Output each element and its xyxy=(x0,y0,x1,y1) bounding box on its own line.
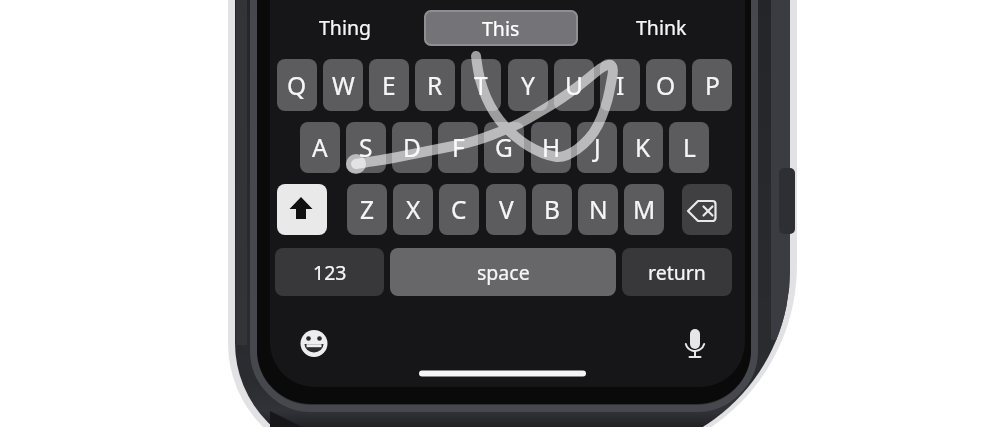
button[interactable]: Think xyxy=(618,8,704,46)
staticText: M xyxy=(633,193,656,226)
button[interactable]: This xyxy=(424,10,578,46)
button[interactable]: C xyxy=(439,184,479,235)
button[interactable]: J xyxy=(577,122,617,173)
staticText: This xyxy=(482,15,520,42)
button[interactable]: B xyxy=(532,184,572,235)
staticText: S xyxy=(359,131,373,164)
staticText: X xyxy=(406,193,421,226)
staticText: C xyxy=(451,193,467,226)
button[interactable]: O xyxy=(646,59,686,111)
button[interactable]: space xyxy=(390,248,616,296)
staticText: E xyxy=(382,69,396,102)
staticText: B xyxy=(544,193,560,226)
button[interactable]: X xyxy=(393,184,433,235)
staticText: K xyxy=(635,131,651,164)
button[interactable]: G xyxy=(484,122,524,173)
button[interactable] xyxy=(277,184,327,235)
button[interactable]: Thing xyxy=(302,8,387,46)
button[interactable]: S xyxy=(346,122,386,173)
button[interactable]: V xyxy=(486,184,526,235)
staticText: P xyxy=(705,69,720,102)
staticText: F xyxy=(452,131,465,164)
staticText: Z xyxy=(360,193,375,226)
staticText: 123 xyxy=(313,259,347,286)
staticText: Think xyxy=(636,14,687,41)
staticText: A xyxy=(312,131,328,164)
staticText: V xyxy=(499,193,514,226)
staticText: R xyxy=(427,69,443,102)
staticText: L xyxy=(683,131,696,164)
staticText: Thing xyxy=(319,14,371,41)
button[interactable] xyxy=(682,184,732,235)
staticText: T xyxy=(474,69,488,102)
button[interactable]: R xyxy=(415,59,455,111)
staticText: I xyxy=(616,69,625,102)
staticText: J xyxy=(594,131,601,164)
staticText: space xyxy=(477,259,530,286)
staticText: Q xyxy=(287,69,307,102)
button[interactable]: T xyxy=(461,59,501,111)
button[interactable]: M xyxy=(624,184,664,235)
staticText: G xyxy=(495,131,513,164)
button[interactable]: W xyxy=(323,59,363,111)
button[interactable] xyxy=(677,326,713,362)
staticText: H xyxy=(542,131,561,164)
button[interactable]: F xyxy=(438,122,478,173)
staticText: W xyxy=(332,69,355,102)
button[interactable]: H xyxy=(531,122,571,173)
button[interactable]: Z xyxy=(347,184,387,235)
button[interactable]: E xyxy=(369,59,409,111)
button[interactable] xyxy=(296,326,332,362)
button[interactable]: A xyxy=(300,122,340,173)
button[interactable]: Y xyxy=(508,59,548,111)
button[interactable]: return xyxy=(622,248,732,296)
button[interactable]: N xyxy=(578,184,618,235)
button[interactable]: Q xyxy=(277,59,317,111)
button[interactable]: L xyxy=(669,122,709,173)
button[interactable]: P xyxy=(692,59,732,111)
button[interactable]: D xyxy=(392,122,432,173)
button[interactable]: K xyxy=(623,122,663,173)
staticText: N xyxy=(589,193,608,226)
button[interactable]: I xyxy=(600,59,640,111)
staticText: O xyxy=(656,69,676,102)
button[interactable]: 123 xyxy=(275,248,384,296)
staticText: D xyxy=(403,131,421,164)
staticText: U xyxy=(565,69,583,102)
staticText: Y xyxy=(521,69,535,102)
staticText: return xyxy=(648,259,706,286)
button[interactable]: U xyxy=(554,59,594,111)
